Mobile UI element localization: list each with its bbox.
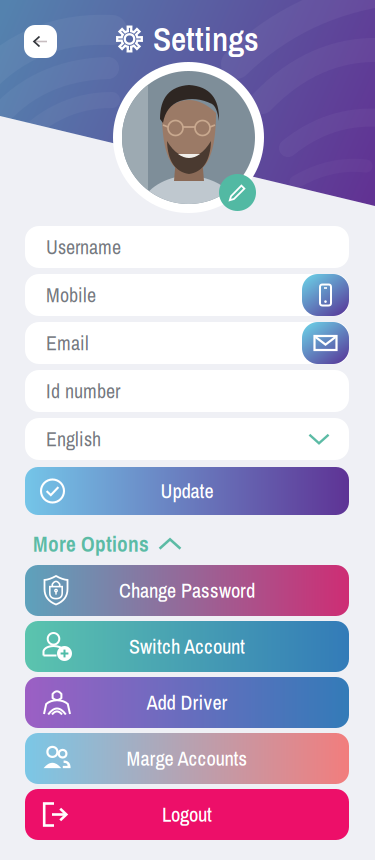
button[interactable]: Id number [25,370,349,412]
button[interactable]: Add Driver [25,677,349,728]
button[interactable]: Change Password [25,565,349,616]
staticText: More Options [33,530,149,558]
staticText: Mobile [46,281,96,308]
button[interactable]: Edit profile photo [219,174,256,211]
button[interactable]: Username [25,226,349,268]
button[interactable]: Marge Accounts [25,733,349,784]
staticText: Id number [46,377,120,404]
staticText: Username [46,233,121,260]
button[interactable]: More Options [33,531,233,557]
staticText: Email [46,329,89,356]
button[interactable]: Switch Account [25,621,349,672]
button[interactable]: Update [25,467,349,515]
staticText: Logout [162,801,212,828]
staticText: Change Password [119,577,255,604]
button[interactable]: Logout [25,789,349,840]
staticText: Add Driver [146,689,227,716]
staticText: Update [160,477,213,504]
staticText: Settings [153,17,259,61]
button[interactable]: Mobile [25,274,349,316]
button[interactable]: Back [24,25,57,58]
staticText: Switch Account [129,633,245,660]
staticText: English [46,425,101,452]
button[interactable]: Email [25,322,349,364]
button[interactable]: English [25,418,349,460]
staticText: Marge Accounts [126,745,247,772]
